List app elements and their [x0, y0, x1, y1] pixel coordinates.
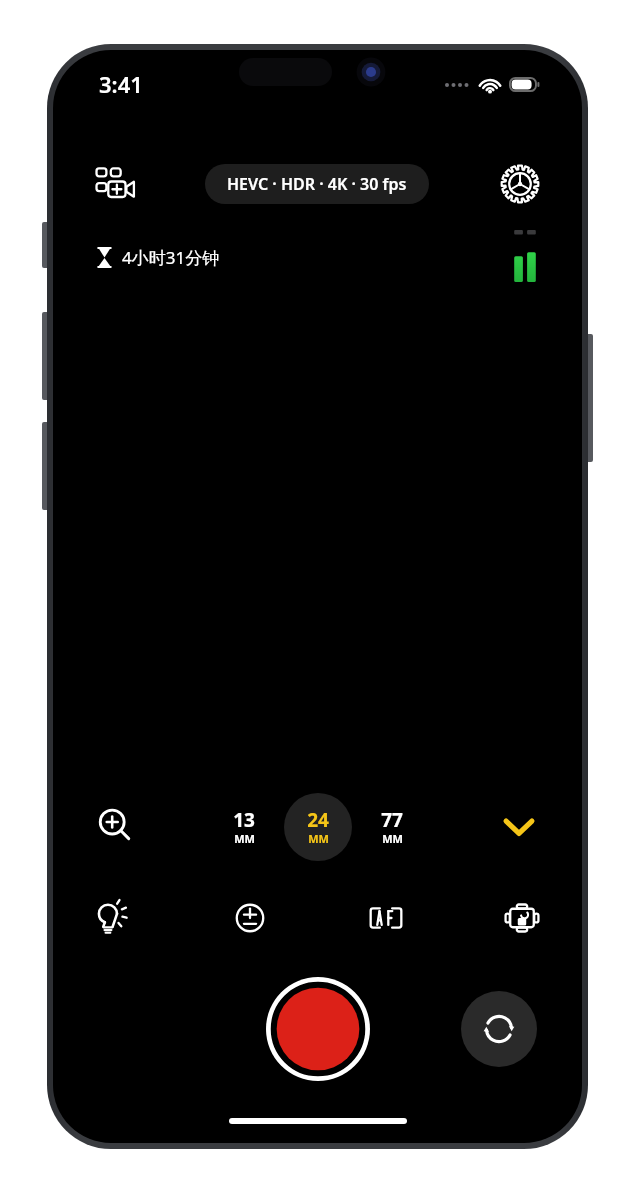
staticText: 24	[307, 807, 329, 833]
staticText: 77	[381, 807, 403, 833]
button[interactable]: Record	[266, 977, 370, 1081]
staticText: MM	[382, 831, 403, 846]
button[interactable]: Auto focus	[356, 888, 416, 948]
button[interactable]: 24	[284, 793, 352, 861]
button[interactable]: 4小时31分钟	[93, 242, 224, 273]
button[interactable]: Collapse controls	[490, 798, 548, 856]
button[interactable]: White balance lock	[492, 888, 552, 948]
button[interactable]: New video preset	[89, 158, 141, 210]
staticText: HEVC · HDR · 4K · 30 fps	[227, 173, 407, 195]
button[interactable]: Settings	[494, 158, 546, 210]
button[interactable]: Exposure	[220, 888, 280, 948]
button[interactable]: Torch	[83, 888, 143, 948]
button[interactable]: 77	[358, 793, 426, 861]
staticText: 13	[233, 807, 255, 833]
staticText: 4小时31分钟	[122, 246, 220, 269]
button[interactable]: HEVC · HDR · 4K · 30 fps	[205, 164, 429, 204]
button[interactable]: Switch camera	[461, 991, 537, 1067]
button[interactable]: 13	[210, 793, 278, 861]
staticText: 3:41	[99, 69, 143, 99]
button[interactable]: Zoom	[87, 798, 145, 856]
staticText: MM	[308, 831, 329, 846]
staticText: MM	[234, 831, 255, 846]
